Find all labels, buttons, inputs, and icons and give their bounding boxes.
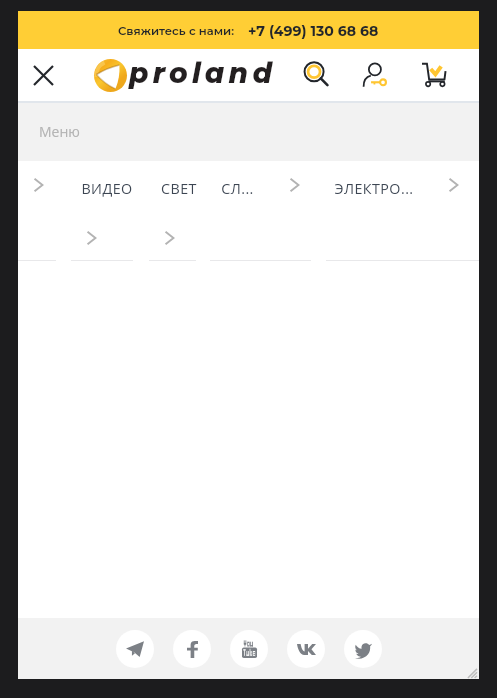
button[interactable]: proland [94,49,277,101]
staticText: ЭЛЕКТРО... [334,179,414,197]
button[interactable]: Меню [18,103,479,161]
staticText: СЛ... [221,179,254,197]
button[interactable] [63,161,141,262]
button[interactable]: Twitter [344,630,382,668]
staticText: СВЕТ [161,179,197,197]
button[interactable]: VKontakte [287,630,325,668]
button[interactable]: Facebook [173,630,211,668]
button[interactable]: Account [354,49,398,101]
button[interactable]: YouTube [230,630,268,668]
staticText: +7 (499) 130 68 68 [248,22,379,39]
button[interactable]: Open category [0,161,63,262]
button[interactable]: Close menu [21,49,66,101]
button[interactable] [318,161,479,262]
staticText: ВИДЕО [81,179,133,197]
staticText: proland [129,56,277,90]
button[interactable]: Cart [413,49,457,101]
button[interactable] [203,161,318,262]
button[interactable]: Telegram [116,630,154,668]
staticText: Меню [39,122,80,141]
button[interactable] [141,161,203,262]
staticText: Свяжитесь с нами: [118,24,235,38]
button[interactable]: Search [294,49,338,101]
button[interactable]: Свяжитесь с нами: [18,11,479,49]
